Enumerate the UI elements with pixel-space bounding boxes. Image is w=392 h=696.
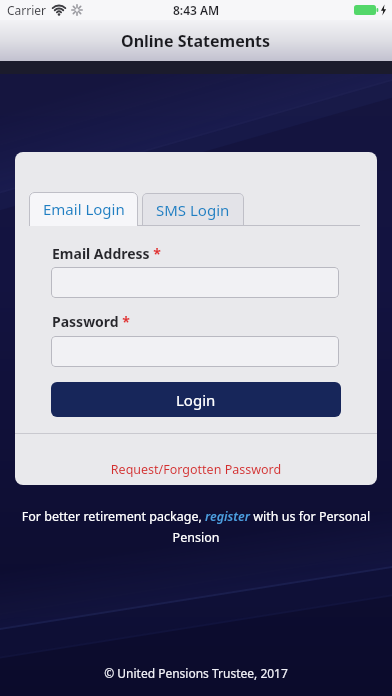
button[interactable]: Request/Forgotten Password bbox=[15, 434, 377, 485]
button[interactable]: Email Login bbox=[29, 192, 138, 226]
button[interactable]: SMS Login bbox=[142, 193, 244, 226]
button[interactable] bbox=[51, 336, 339, 367]
staticText: Password * bbox=[52, 312, 130, 331]
staticText: SMS Login bbox=[156, 200, 230, 220]
staticText: Online Statements bbox=[121, 30, 271, 52]
button[interactable]: For better retirement package, register … bbox=[12, 508, 380, 546]
staticText: Email Address * bbox=[52, 244, 161, 263]
button[interactable]: Login bbox=[51, 382, 341, 417]
staticText: © United Pensions Trustee, 2017 bbox=[0, 665, 392, 681]
staticText: 8:43 AM bbox=[173, 2, 220, 18]
staticText: Email Login bbox=[43, 199, 125, 219]
staticText: Login bbox=[176, 390, 216, 410]
staticText: Request/Forgotten Password bbox=[15, 461, 377, 478]
button[interactable] bbox=[51, 267, 339, 298]
staticText: Carrier bbox=[7, 2, 47, 18]
